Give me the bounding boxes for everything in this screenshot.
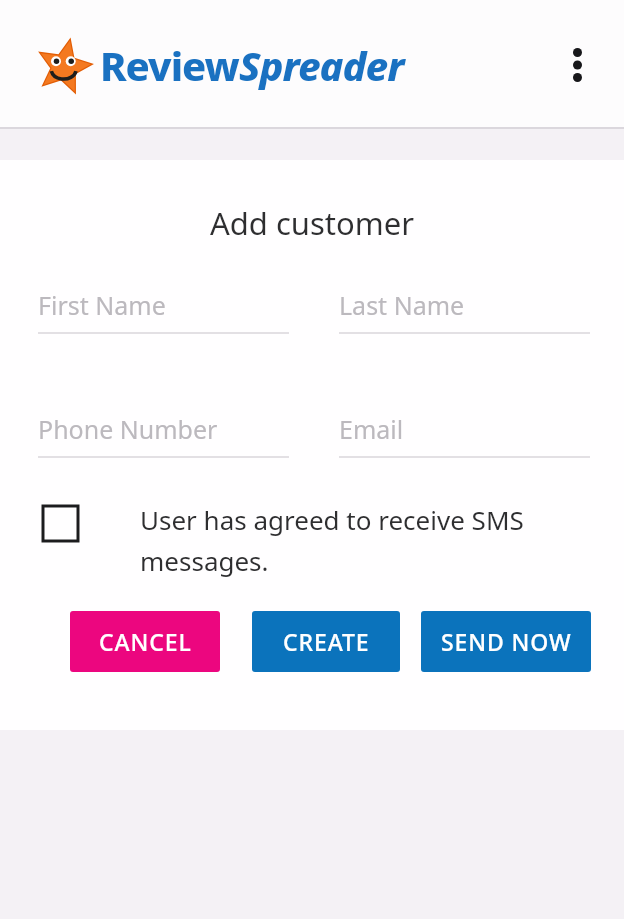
button[interactable]: More options — [550, 38, 604, 92]
staticText: User has agreed to receive SMS messages. — [140, 502, 584, 579]
staticText: First Name — [38, 288, 166, 322]
button[interactable]: User has agreed to receive SMS messages. — [0, 502, 624, 579]
button[interactable]: CANCEL — [70, 611, 220, 672]
staticText: Email — [339, 412, 404, 446]
button[interactable]: SEND NOW — [421, 611, 591, 672]
staticText: SEND NOW — [441, 626, 572, 657]
staticText: CREATE — [283, 626, 370, 657]
staticText: Spreader — [239, 38, 404, 92]
button[interactable]: Last Name — [339, 288, 590, 334]
staticText: CANCEL — [99, 626, 192, 657]
staticText: Review — [100, 38, 239, 92]
staticText: Add customer — [0, 202, 624, 244]
button[interactable]: Phone Number — [38, 412, 289, 458]
staticText: Phone Number — [38, 412, 218, 446]
button[interactable]: CREATE — [252, 611, 400, 672]
staticText: Last Name — [339, 288, 465, 322]
button[interactable]: Email — [339, 412, 590, 458]
button[interactable]: First Name — [38, 288, 289, 334]
